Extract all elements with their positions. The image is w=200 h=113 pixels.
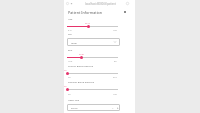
staticText: 120 [113,29,117,32]
button[interactable] [67,56,118,59]
button[interactable]: Tabs [66,2,69,5]
button[interactable]: 60.00 [67,104,120,111]
button[interactable] [67,88,118,91]
staticText: Male [71,41,77,44]
staticText: 70 [64,69,67,72]
button[interactable]: Decrease [111,106,114,109]
staticText: 40 [64,85,67,88]
staticText: Age [68,18,73,21]
staticText: 130 [113,93,117,96]
staticText: Diastolic Blood pressure [68,81,95,84]
staticText: + [117,106,119,109]
staticText: BMI [68,49,73,52]
staticText: 45 Yr [85,22,90,25]
staticText: Systolic Blood pressure [68,65,93,68]
staticText: 210 [113,76,117,79]
staticText: 22.51 [79,53,85,56]
staticText: 70 [68,76,71,79]
button[interactable] [67,25,118,28]
staticText: Sex [68,33,72,36]
staticText: localhost:8080/#/patient [85,2,116,6]
staticText: 0 Yr [68,29,72,32]
staticText: 10.0 [68,60,73,63]
button[interactable]: Male [67,38,120,46]
button[interactable] [67,72,118,75]
button[interactable]: Reload [126,2,129,5]
staticText: 60.00 [71,106,78,109]
staticText: − [112,106,114,109]
button[interactable]: Site information [70,2,73,5]
staticText: 50 [114,60,117,63]
staticText: 40 [68,93,71,96]
staticText: Heart rate [68,99,79,102]
button[interactable]: Increase [116,106,119,109]
staticText: Patient Information [68,10,103,15]
